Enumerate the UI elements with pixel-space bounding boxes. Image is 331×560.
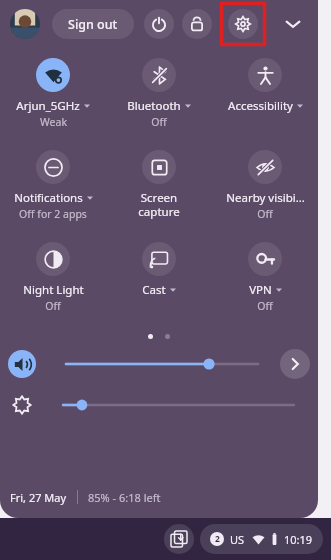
staticText: VPN [249,282,272,298]
staticText: 85% - 6:18 left [88,490,161,505]
button[interactable]: Nearby visibi… [212,150,318,224]
button[interactable]: Cast [106,242,212,316]
button[interactable]: Arjun_5GHz [0,58,106,132]
button[interactable]: Screen capture [106,150,212,224]
button[interactable]: Lock [182,9,212,39]
staticText: Nearby visibi… [226,190,305,206]
staticText: 10:19 [284,532,313,547]
button[interactable]: Account [10,9,40,39]
staticText: Screen capture [138,190,180,219]
button[interactable]: 2 [200,524,323,554]
staticText: Off [257,299,273,313]
staticText: Night Light [23,282,84,298]
staticText: Fri, 27 May [10,490,67,505]
button[interactable]: Bluetooth [106,58,212,132]
button[interactable]: Notifications [0,150,106,224]
button[interactable] [66,351,258,377]
button[interactable]: Volume [8,350,36,378]
button[interactable]: Brightness [8,391,36,419]
staticText: Weak [40,115,67,129]
staticText: Off for 2 apps [19,207,87,221]
staticText: Accessibility [228,98,293,114]
button[interactable]: Desks [164,524,194,554]
button[interactable] [63,392,294,418]
button[interactable]: VPN [212,242,318,316]
staticText: Cast [142,282,166,298]
staticText: US [230,532,245,547]
staticText: Arjun_5GHz [16,98,80,114]
button[interactable]: Night Light [0,242,106,316]
button[interactable]: Next page [280,349,310,379]
staticText: Off [45,299,61,313]
button[interactable]: Collapse [276,7,310,41]
staticText: Bluetooth [127,98,181,114]
button[interactable]: 85% - 6:18 left [88,490,161,505]
staticText: Sign out [68,16,118,33]
button[interactable]: Accessibility [212,58,318,132]
button[interactable]: Power [144,9,174,39]
button[interactable]: Settings [228,9,258,39]
staticText: Off [257,207,273,221]
button[interactable]: Sign out [52,9,134,39]
staticText: Notifications [14,190,83,206]
staticText: 2 [215,533,220,545]
staticText: Off [151,115,167,129]
button[interactable]: Fri, 27 May [10,490,67,505]
